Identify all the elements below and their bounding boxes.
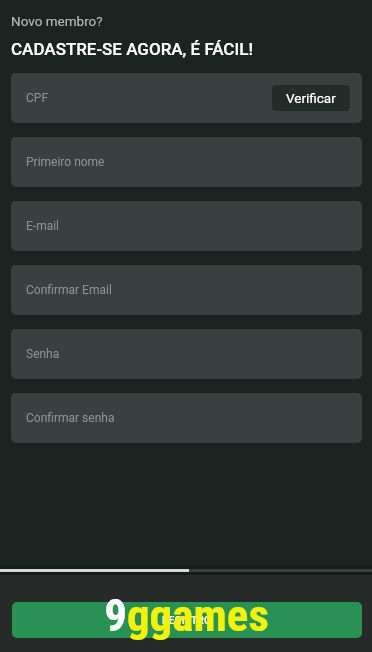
staticText: E-mail: [26, 219, 60, 233]
button[interactable]: Confirmar Email: [11, 265, 362, 315]
staticText: Novo membro?: [11, 13, 103, 29]
button[interactable]: Primeiro nome: [11, 137, 362, 187]
staticText: Primeiro nome: [26, 155, 105, 169]
staticText: Senha: [26, 347, 60, 361]
staticText: Confirmar Email: [26, 283, 112, 297]
staticText: CPF: [26, 91, 49, 105]
button[interactable]: Confirmar senha: [11, 393, 362, 443]
button[interactable]: REGISTRO: [12, 602, 362, 638]
staticText: 9ggames: [104, 589, 269, 642]
staticText: Confirmar senha: [26, 411, 115, 425]
button[interactable]: Verificar: [272, 85, 350, 111]
button[interactable]: Senha: [11, 329, 362, 379]
button[interactable]: E-mail: [11, 201, 362, 251]
staticText: REGISTRO: [162, 614, 212, 626]
staticText: CADASTRE-SE AGORA, É FÁCIL!: [11, 39, 253, 59]
button[interactable]: CPF: [11, 73, 362, 123]
staticText: Verificar: [286, 90, 336, 106]
